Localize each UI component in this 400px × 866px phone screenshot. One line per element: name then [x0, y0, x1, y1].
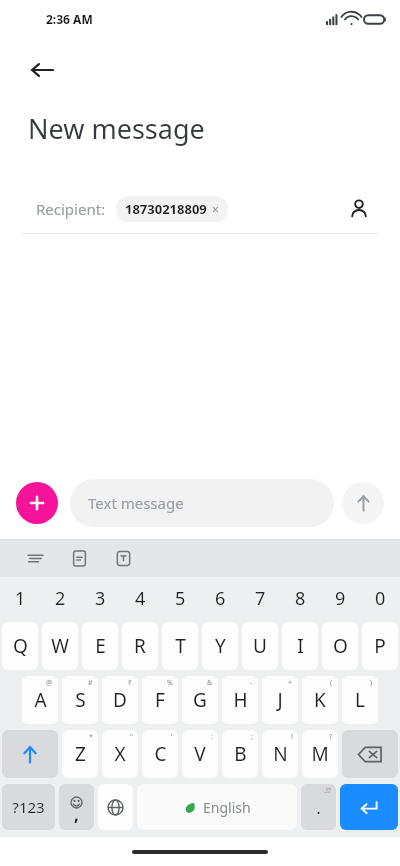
button[interactable]: 4 [120, 577, 160, 619]
staticText: % [167, 678, 173, 688]
button[interactable]: 5 [160, 577, 200, 619]
button[interactable]: Y [202, 622, 238, 670]
button[interactable]: C [142, 730, 178, 778]
staticText: 2 [55, 586, 66, 611]
staticText: .!? [324, 786, 331, 796]
button[interactable]: O [322, 622, 358, 670]
staticText: : [211, 732, 213, 742]
button[interactable]: D [102, 676, 138, 724]
button[interactable]: 6 [200, 577, 240, 619]
staticText: & [207, 678, 213, 688]
button[interactable]: 0 [360, 577, 400, 619]
button[interactable]: G [182, 676, 218, 724]
button[interactable]: X [102, 730, 138, 778]
button[interactable]: B [222, 730, 258, 778]
button[interactable]: Send [342, 482, 384, 524]
staticText: E [95, 633, 106, 659]
staticText: Y [215, 633, 226, 659]
button[interactable]: T [162, 622, 198, 670]
staticText: Z [75, 741, 86, 767]
button[interactable]: 7 [240, 577, 280, 619]
staticText: ( [330, 678, 333, 688]
button[interactable]: Enter [340, 784, 398, 830]
button[interactable]: 9 [320, 577, 360, 619]
other: Switch language [107, 799, 124, 816]
button[interactable]: Q [2, 622, 38, 670]
button[interactable]: Clipboard [64, 543, 94, 573]
button[interactable]: W [42, 622, 78, 670]
staticText: M [311, 741, 329, 767]
staticText: S [75, 687, 86, 713]
button[interactable]: V [182, 730, 218, 778]
staticText: 1 [15, 586, 26, 611]
staticText: G [193, 687, 207, 713]
staticText: × [212, 201, 219, 217]
button[interactable]: I [282, 622, 318, 670]
staticText: W [51, 633, 69, 659]
staticText: , [74, 803, 79, 826]
button[interactable]: J [262, 676, 298, 724]
button[interactable]: Back [20, 48, 64, 92]
button[interactable]: K [302, 676, 338, 724]
button[interactable]: Add attachment [16, 482, 58, 524]
staticText: ? [329, 732, 333, 742]
button[interactable]: Backspace [342, 730, 398, 778]
other: Emoji and comma [59, 784, 94, 830]
button[interactable]: Text message [70, 479, 334, 527]
staticText: + [288, 678, 293, 688]
button[interactable]: 2 [40, 577, 80, 619]
button[interactable]: Menu [20, 543, 50, 573]
button[interactable]: . [301, 784, 336, 830]
button[interactable]: A [22, 676, 58, 724]
staticText: * [89, 732, 93, 742]
button[interactable]: S [62, 676, 98, 724]
button[interactable]: N [262, 730, 298, 778]
button[interactable]: L [342, 676, 378, 724]
staticText: D [113, 687, 127, 713]
staticText: " [130, 732, 133, 742]
button[interactable]: F [142, 676, 178, 724]
staticText: 6 [215, 586, 226, 611]
staticText: 8 [295, 586, 306, 611]
staticText: O [333, 633, 348, 659]
button[interactable]: 18730218809 [116, 196, 228, 222]
button[interactable]: H [222, 676, 258, 724]
staticText: N [273, 741, 288, 767]
staticText: 2:36 AM [46, 11, 93, 27]
button[interactable]: Contacts [340, 190, 378, 228]
button[interactable]: P [362, 622, 398, 670]
staticText: . [316, 796, 321, 819]
staticText: ! [291, 732, 293, 742]
staticText: ₹ [128, 678, 133, 688]
button[interactable]: U [242, 622, 278, 670]
button[interactable]: ?123 [2, 784, 55, 830]
button[interactable]: English [137, 784, 297, 830]
staticText: Text message [88, 493, 184, 513]
staticText: F [155, 687, 165, 713]
button[interactable]: M [302, 730, 338, 778]
button[interactable]: Switch language [98, 784, 133, 830]
staticText: ; [251, 732, 253, 742]
staticText: K [314, 687, 326, 713]
button[interactable]: 3 [80, 577, 120, 619]
other: Backspace [358, 746, 382, 763]
staticText: 4 [135, 586, 146, 611]
staticText: 7 [255, 586, 266, 611]
staticText: C [154, 741, 167, 767]
button[interactable]: Z [62, 730, 98, 778]
button[interactable]: E [82, 622, 118, 670]
staticText: A [34, 687, 47, 713]
button[interactable]: Shift [2, 730, 58, 778]
button[interactable]: Text formatting [108, 543, 138, 573]
button[interactable]: 8 [280, 577, 320, 619]
button[interactable]: Emoji and comma [59, 784, 94, 830]
staticText: V [194, 741, 206, 767]
staticText: ) [370, 678, 373, 688]
button[interactable]: R [122, 622, 158, 670]
staticText: T [175, 633, 186, 659]
staticText: Q [13, 633, 28, 659]
staticText: - [250, 678, 253, 688]
staticText: ' [171, 732, 173, 742]
button[interactable]: 1 [0, 577, 40, 619]
staticText: J [277, 687, 283, 713]
